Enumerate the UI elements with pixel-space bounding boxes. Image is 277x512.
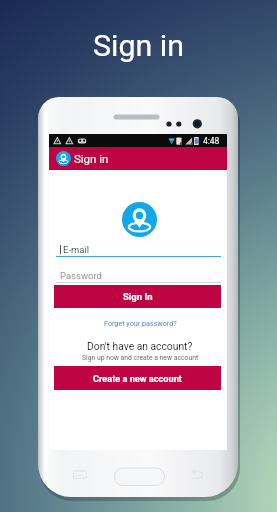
staticText: E-mail [63, 244, 90, 255]
button[interactable]: E-mail [56, 243, 221, 257]
button[interactable]: Password [56, 269, 221, 283]
staticText: Sign In [123, 291, 153, 302]
staticText: Sign in [93, 28, 184, 64]
button[interactable]: Create a new account [54, 366, 221, 390]
staticText: Forget your password? [104, 319, 177, 327]
button[interactable]: Sign in [49, 147, 227, 170]
staticText: Sign in [74, 152, 109, 165]
staticText: 4:48 [203, 136, 220, 146]
button[interactable]: Forget your password? [51, 317, 229, 328]
staticText: Create a new account [93, 373, 182, 384]
staticText: Don't have an account? [87, 340, 193, 352]
button[interactable]: Sign In [54, 285, 221, 308]
staticText: Sign up now and create a new account [82, 354, 199, 362]
staticText: Password [60, 270, 102, 281]
